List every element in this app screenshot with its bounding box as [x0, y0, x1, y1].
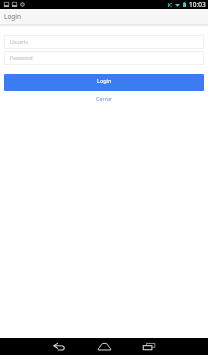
button[interactable]: Recent apps: [132, 338, 166, 355]
staticText: Usuario: [10, 39, 29, 46]
button[interactable]: Usuario: [4, 35, 204, 49]
button[interactable]: Password: [4, 51, 204, 65]
staticText: Cerrar: [96, 95, 113, 102]
button[interactable]: Back: [42, 338, 76, 355]
staticText: 10:03: [189, 0, 206, 9]
button[interactable]: Cerrar: [92, 93, 117, 104]
staticText: Password: [10, 55, 33, 62]
button[interactable]: Home: [87, 338, 121, 355]
staticText: Login: [97, 77, 112, 84]
button[interactable]: Login: [4, 74, 204, 91]
staticText: Login: [4, 12, 22, 21]
